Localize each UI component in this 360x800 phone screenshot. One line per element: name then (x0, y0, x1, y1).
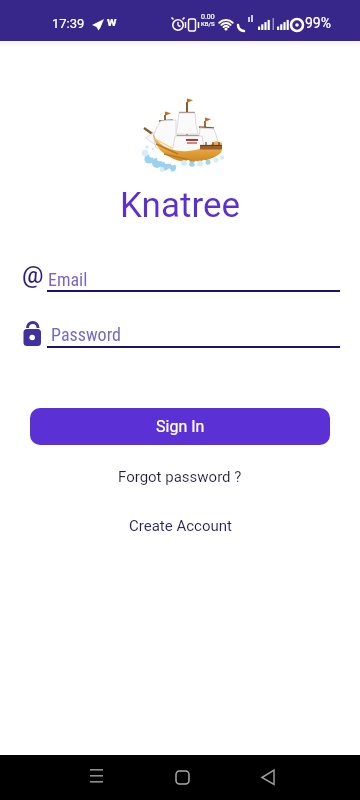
button[interactable]: @ (20, 260, 342, 294)
button[interactable]: Create Account (129, 517, 232, 535)
staticText: Create Account (129, 517, 232, 535)
staticText: 17:39 (52, 16, 85, 31)
button[interactable]: Forgot password ? (118, 468, 242, 486)
button[interactable]: Sign In (30, 408, 330, 445)
staticText: Knatree (120, 185, 241, 226)
staticText: KB/S (201, 20, 215, 27)
staticText: Sign In (156, 417, 205, 436)
staticText: @ (22, 261, 44, 289)
button[interactable] (76, 760, 116, 796)
staticText: Forgot password ? (118, 468, 242, 486)
button[interactable] (162, 760, 202, 796)
button[interactable]: Password (20, 315, 342, 349)
staticText: 99% (305, 15, 331, 31)
button[interactable] (248, 760, 288, 796)
staticText: Password (51, 324, 121, 345)
staticText: w (107, 14, 117, 29)
staticText: Email (48, 269, 88, 290)
staticText: 0.00 (201, 13, 215, 21)
